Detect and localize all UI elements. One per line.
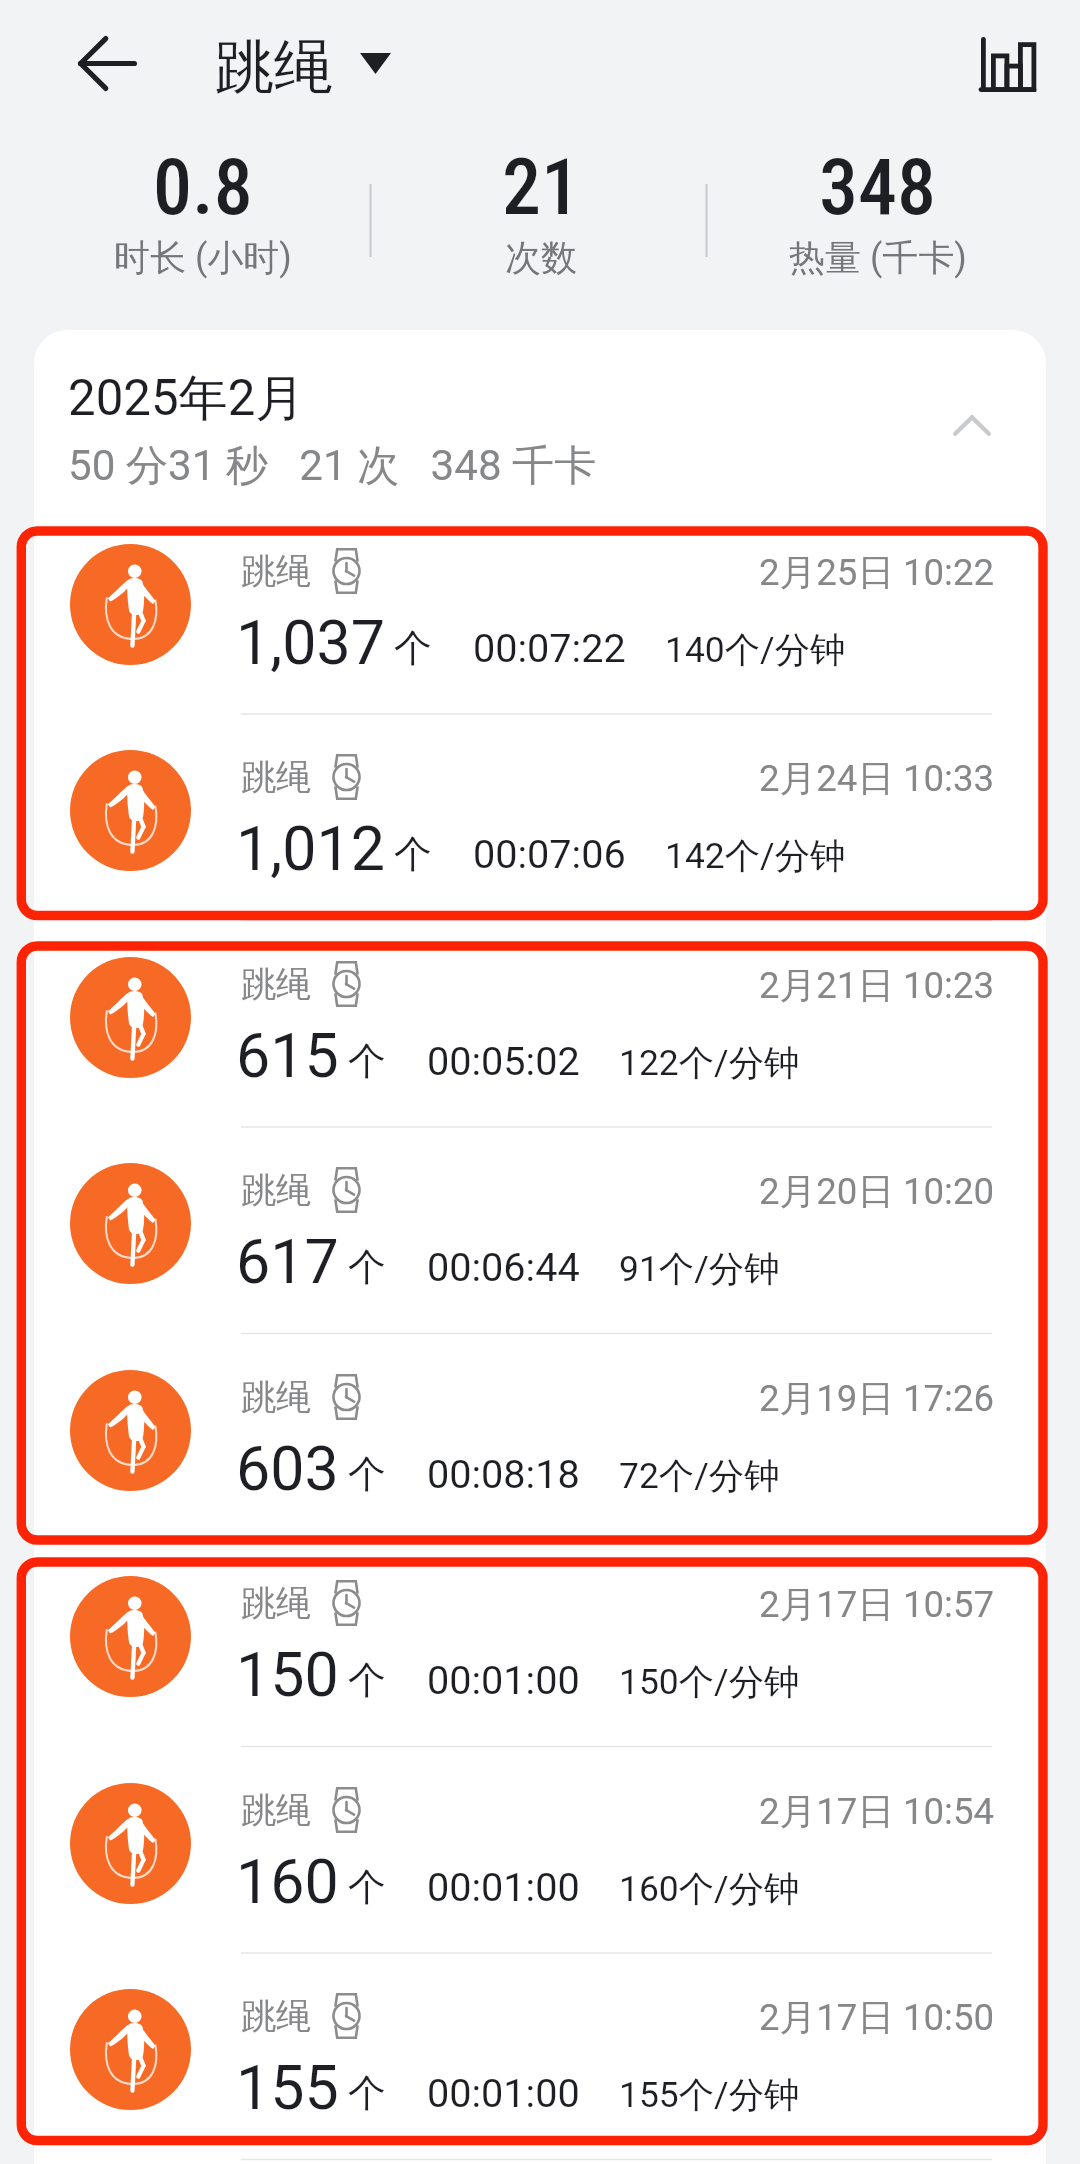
staticText: 615: [236, 1021, 339, 1092]
button[interactable]: 跳绳: [34, 714, 1046, 921]
staticText: 个: [348, 1451, 386, 1499]
staticText: 00:01:00: [427, 1864, 580, 1910]
staticText: 个: [348, 1038, 386, 1086]
staticText: 个: [348, 2070, 386, 2118]
staticText: 个: [348, 1657, 386, 1705]
staticText: 00:08:18: [427, 1451, 580, 1497]
staticText: 2月20日 10:20: [759, 1169, 995, 1215]
staticText: 155: [236, 2053, 339, 2124]
staticText: 2月17日 10:57: [759, 1582, 995, 1628]
staticText: 72个/分钟: [619, 1454, 780, 1499]
staticText: 21: [502, 142, 580, 233]
staticText: 时长 (小时): [114, 235, 292, 280]
button[interactable]: 348: [709, 142, 1046, 280]
staticText: 2025年2月: [68, 368, 305, 430]
staticText: 160个/分钟: [619, 1867, 800, 1912]
staticText: 跳绳: [241, 1994, 312, 2038]
staticText: 122个/分钟: [619, 1041, 800, 1086]
staticText: 跳绳: [241, 549, 312, 593]
staticText: 160: [236, 1847, 339, 1918]
button[interactable]: 21: [372, 142, 709, 280]
button[interactable]: 跳绳: [34, 1540, 1046, 1747]
button[interactable]: 跳绳: [215, 30, 391, 102]
staticText: 155个/分钟: [619, 2073, 800, 2118]
button[interactable]: 跳绳: [34, 1747, 1046, 1954]
staticText: 跳绳: [241, 1168, 312, 1212]
button[interactable]: 跳绳: [34, 1334, 1046, 1541]
staticText: 142个/分钟: [665, 834, 846, 879]
staticText: 00:06:44: [427, 1244, 580, 1290]
staticText: 次数: [505, 235, 577, 280]
staticText: 2月17日 10:54: [759, 1789, 995, 1835]
staticText: 跳绳: [215, 30, 333, 102]
staticText: 2月17日 10:50: [759, 1995, 995, 2041]
staticText: 跳绳: [241, 962, 312, 1006]
button[interactable]: Back: [71, 27, 143, 99]
button[interactable]: 2025年2月: [34, 330, 1046, 508]
button[interactable]: 跳绳: [34, 921, 1046, 1128]
staticText: 617: [236, 1227, 339, 1298]
staticText: 跳绳: [241, 755, 312, 799]
button[interactable]: 0.8: [34, 142, 372, 280]
staticText: 个: [394, 625, 432, 673]
staticText: 00:07:06: [473, 831, 626, 877]
staticText: 2月19日 17:26: [759, 1376, 995, 1422]
staticText: 50 分31 秒 21 次 348 千卡: [68, 439, 597, 492]
staticText: 2月24日 10:33: [759, 756, 995, 802]
button[interactable]: 跳绳: [34, 1127, 1046, 1334]
staticText: 91个/分钟: [619, 1247, 780, 1292]
staticText: 个: [394, 831, 432, 879]
staticText: 00:05:02: [427, 1038, 580, 1084]
staticText: 348: [819, 142, 936, 233]
staticText: 00:07:22: [473, 625, 626, 671]
staticText: 150个/分钟: [619, 1660, 800, 1705]
staticText: 1,012: [236, 814, 385, 885]
button[interactable]: 跳绳: [34, 508, 1046, 715]
button[interactable]: 跳绳: [34, 1953, 1046, 2160]
staticText: 跳绳: [241, 1581, 312, 1625]
staticText: 00:01:00: [427, 1657, 580, 1703]
staticText: 150: [236, 1640, 339, 1711]
staticText: 140个/分钟: [665, 628, 846, 673]
staticText: 跳绳: [241, 1375, 312, 1419]
staticText: 2月21日 10:23: [759, 963, 995, 1009]
staticText: 个: [348, 1244, 386, 1292]
staticText: 1,037: [236, 608, 385, 679]
staticText: 2月25日 10:22: [759, 550, 995, 596]
staticText: 0.8: [153, 142, 253, 233]
staticText: 00:01:00: [427, 2070, 580, 2116]
staticText: 热量 (千卡): [789, 235, 967, 280]
staticText: 603: [236, 1434, 339, 1505]
staticText: 个: [348, 1864, 386, 1912]
button[interactable]: Statistics: [971, 28, 1043, 100]
staticText: 跳绳: [241, 1788, 312, 1832]
